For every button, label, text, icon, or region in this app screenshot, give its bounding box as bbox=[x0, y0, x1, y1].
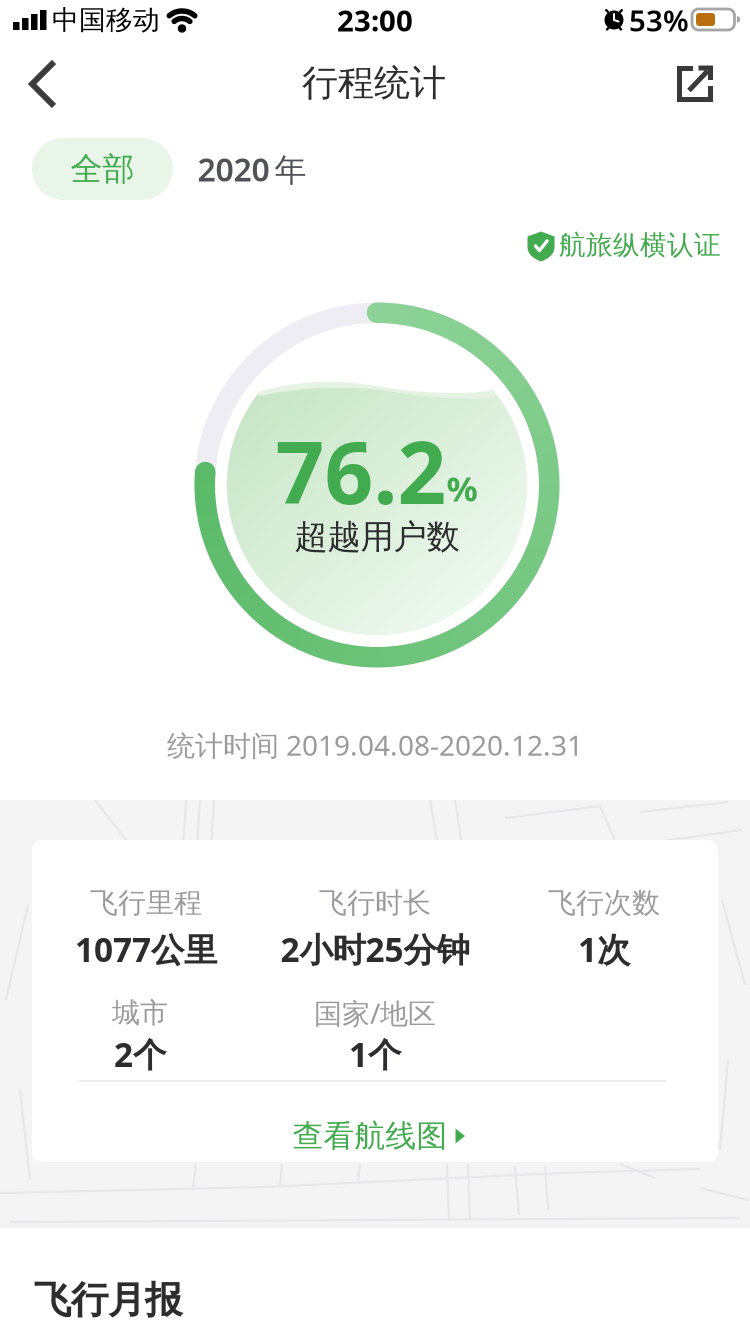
staticText: 飞行时长 bbox=[319, 886, 431, 920]
staticText: 国家/地区 bbox=[314, 994, 436, 1032]
staticText: 城市 bbox=[112, 996, 168, 1030]
staticText: 飞行里程 bbox=[90, 886, 202, 920]
staticText: 53% bbox=[629, 0, 689, 39]
button[interactable]: 2020 年 bbox=[177, 138, 327, 200]
staticText: 超越用户数 bbox=[294, 516, 459, 557]
staticText: % bbox=[446, 465, 477, 511]
staticText: 统计时间 2019.04.08-2020.12.31 bbox=[167, 726, 583, 764]
button[interactable]: 查看航线图 bbox=[292, 1117, 467, 1155]
staticText: 2个 bbox=[114, 1032, 166, 1076]
staticText: 1个 bbox=[349, 1032, 401, 1076]
staticText: 23:00 bbox=[337, 0, 413, 39]
staticText: 2020 年 bbox=[197, 148, 306, 190]
staticText: 1次 bbox=[578, 927, 630, 971]
staticText: 2小时25分钟 bbox=[280, 927, 469, 971]
staticText: 76.2 bbox=[275, 414, 446, 528]
staticText: 查看航线图 bbox=[292, 1117, 447, 1155]
button[interactable]: Share bbox=[677, 64, 715, 104]
staticText: 全部 bbox=[70, 149, 134, 189]
staticText: 1077公里 bbox=[75, 927, 217, 971]
staticText: 航旅纵横认证 bbox=[559, 229, 721, 261]
staticText: 飞行月报 bbox=[34, 1277, 182, 1323]
staticText: 行程统计 bbox=[302, 61, 446, 105]
staticText: 中国移动 bbox=[52, 4, 160, 36]
button[interactable]: 全部 bbox=[32, 138, 173, 200]
button[interactable]: Back bbox=[27, 58, 61, 110]
staticText: 飞行次数 bbox=[548, 886, 660, 920]
